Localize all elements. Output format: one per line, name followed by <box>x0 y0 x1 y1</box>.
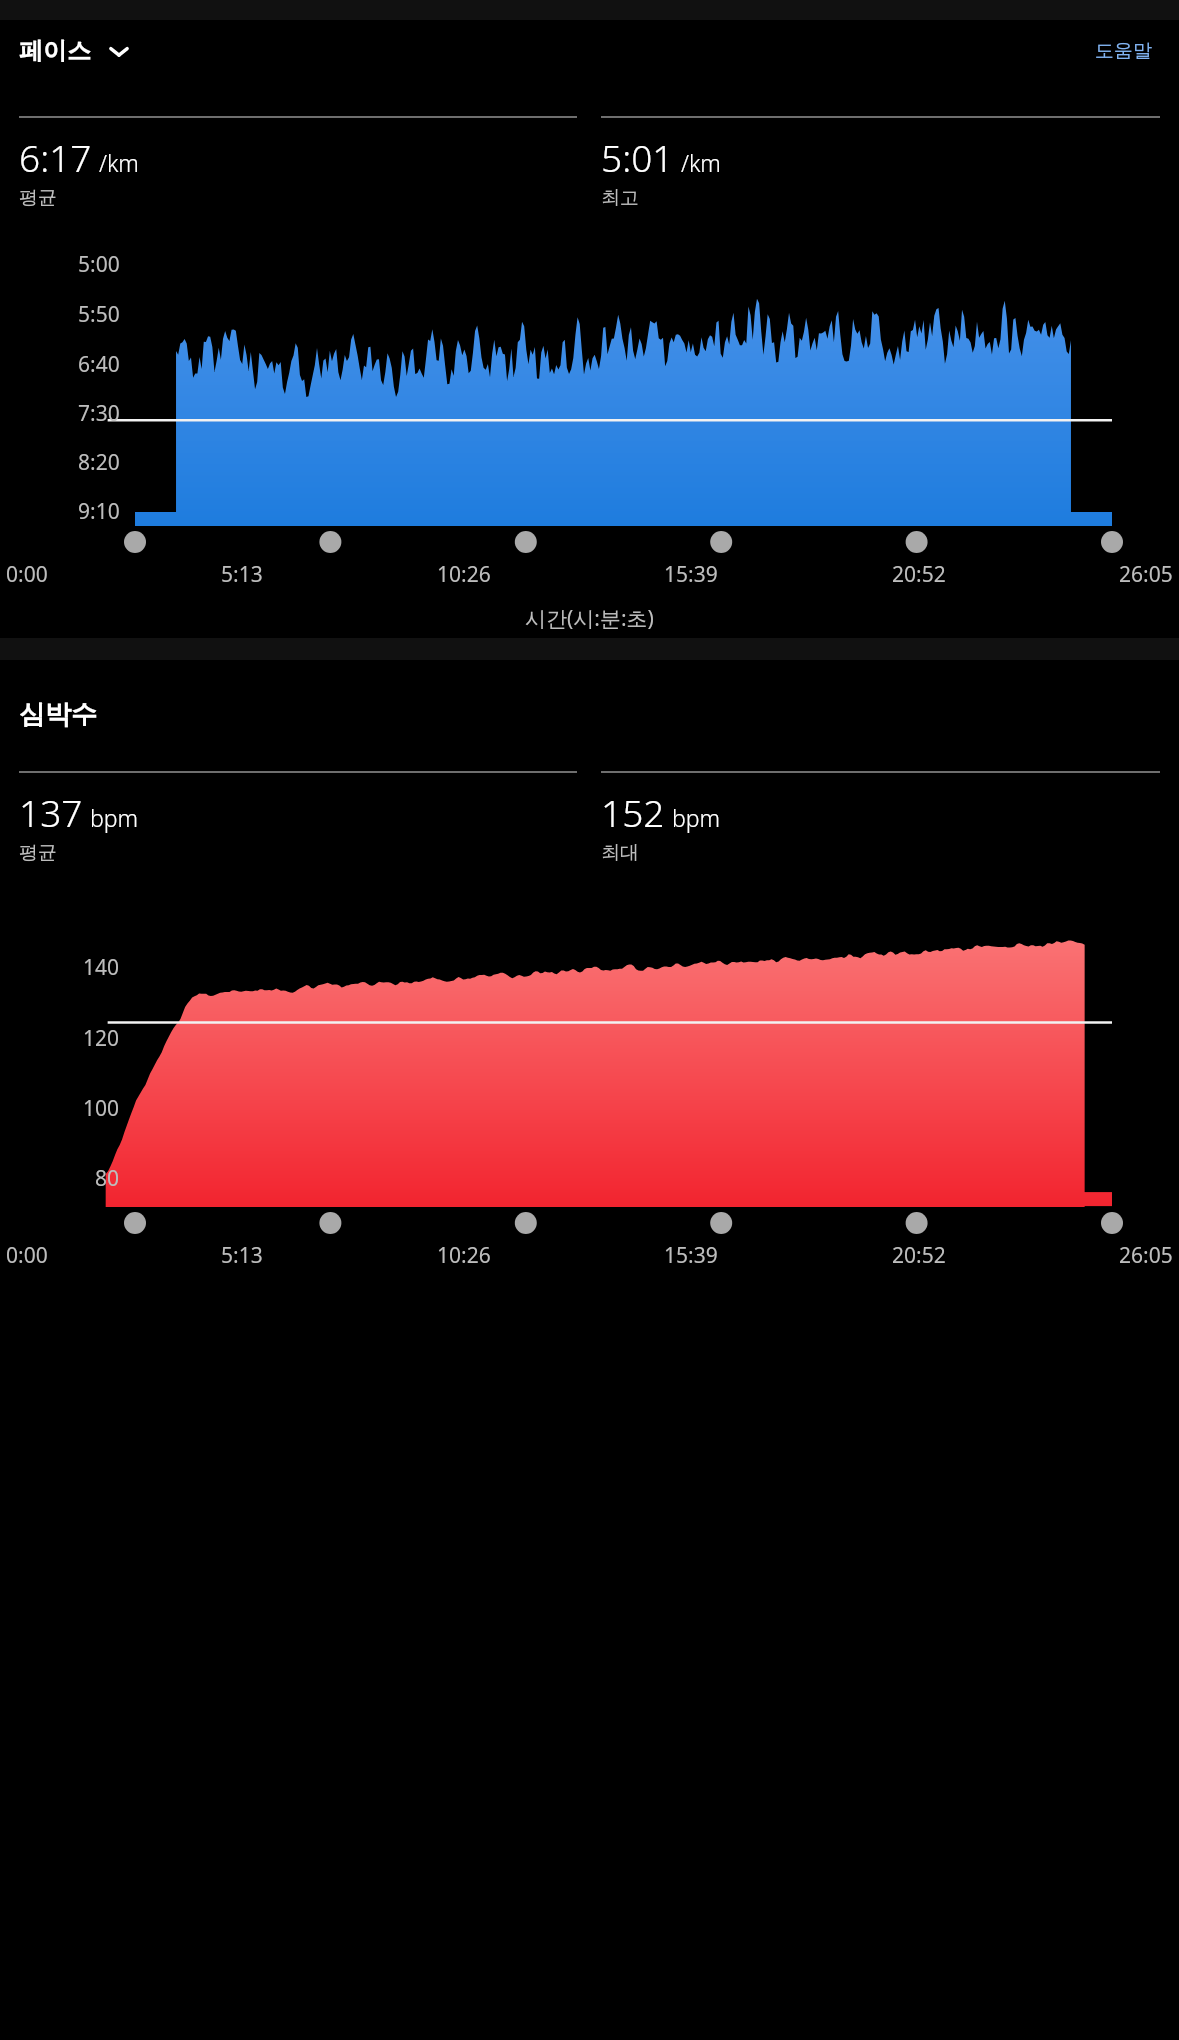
staticText: 시간(시:분:초) <box>525 604 654 633</box>
staticText: 137 <box>19 787 83 837</box>
staticText: 8:20 <box>78 448 120 477</box>
staticText: /km <box>99 147 139 178</box>
staticText: 평균 <box>19 186 57 210</box>
staticText: bpm <box>672 802 721 833</box>
staticText: 5:00 <box>78 250 120 279</box>
button[interactable]: 6:17 <box>19 116 577 210</box>
staticText: 15:39 <box>664 1241 718 1270</box>
staticText: 평균 <box>19 841 57 865</box>
staticText: 5:01 <box>601 132 674 182</box>
staticText: 9:10 <box>78 497 120 526</box>
button[interactable]: 페이스 <box>19 36 131 66</box>
staticText: 80 <box>95 1164 120 1193</box>
button[interactable]: 137 <box>19 771 577 865</box>
staticText: 10:26 <box>437 560 491 589</box>
staticText: 152 <box>601 787 665 837</box>
staticText: 15:39 <box>664 560 718 589</box>
staticText: 5:50 <box>78 300 120 329</box>
staticText: 5:13 <box>221 1241 263 1270</box>
staticText: 도움말 <box>1095 39 1152 63</box>
staticText: 0:00 <box>6 1241 48 1270</box>
staticText: 10:26 <box>437 1241 491 1270</box>
button[interactable]: 도움말 <box>1087 31 1160 71</box>
staticText: 6:40 <box>78 350 120 379</box>
staticText: 최대 <box>601 841 639 865</box>
staticText: 20:52 <box>892 560 946 589</box>
staticText: 120 <box>83 1024 120 1053</box>
staticText: 0:00 <box>6 560 48 589</box>
staticText: 20:52 <box>892 1241 946 1270</box>
staticText: 140 <box>83 953 120 982</box>
button[interactable]: 5:01 <box>601 116 1160 210</box>
staticText: 최고 <box>601 186 639 210</box>
staticText: /km <box>681 147 721 178</box>
staticText: 페이스 <box>19 36 91 66</box>
staticText: 26:05 <box>1119 560 1173 589</box>
staticText: 7:30 <box>78 399 120 428</box>
staticText: 5:13 <box>221 560 263 589</box>
staticText: bpm <box>90 802 139 833</box>
staticText: 심박수 <box>19 698 97 731</box>
other: 메트릭 선택 <box>107 39 131 63</box>
button[interactable]: 152 <box>601 771 1160 865</box>
staticText: 26:05 <box>1119 1241 1173 1270</box>
staticText: 100 <box>83 1094 120 1123</box>
staticText: 6:17 <box>19 132 92 182</box>
